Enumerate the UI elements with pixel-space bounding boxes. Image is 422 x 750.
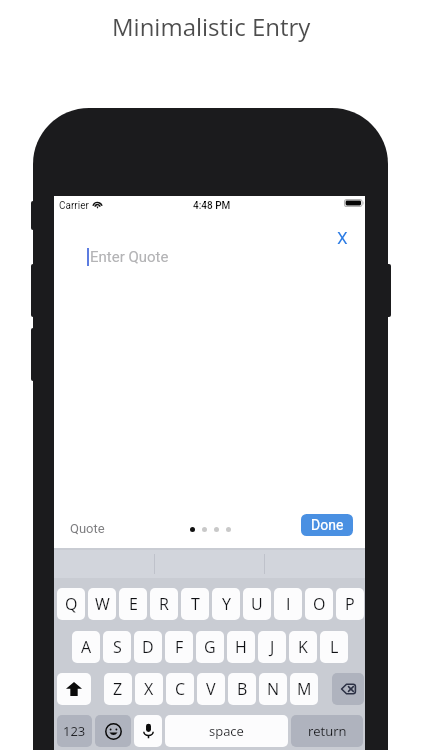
button[interactable]: F [165,631,193,663]
staticText: N [267,678,280,700]
button[interactable]: X [135,673,163,705]
staticText: A [81,636,92,658]
button[interactable]: W [88,588,116,620]
staticText: T [191,593,200,615]
button[interactable]: D [134,631,162,663]
button[interactable]: C [166,673,194,705]
button[interactable]: 123 [57,715,92,747]
button[interactable]: N [259,673,287,705]
staticText: M [297,678,312,700]
staticText: B [237,678,248,700]
button[interactable]: A [72,631,100,663]
button[interactable]: return [291,715,363,747]
staticText: S [113,636,122,658]
staticText: O [313,593,326,615]
staticText: 123 [63,722,86,740]
staticText: Q [65,593,78,615]
button[interactable]: Dictation [134,715,162,747]
button[interactable]: M [290,673,318,705]
button[interactable]: Y [212,588,240,620]
staticText: J [270,636,275,658]
staticText: E [129,593,138,615]
button[interactable]: Backspace [332,673,364,705]
button[interactable]: Shift [57,673,91,705]
button[interactable]: T [181,588,209,620]
button[interactable]: Done [301,514,353,536]
button[interactable]: Quote [70,521,105,536]
staticText: Z [113,678,123,700]
button[interactable]: Close [327,224,357,252]
staticText: Minimalistic Entry [112,10,311,43]
button[interactable]: Q [57,588,85,620]
button[interactable]: P [336,588,364,620]
staticText: X [337,228,348,248]
button[interactable]: V [197,673,225,705]
staticText: P [345,593,355,615]
button[interactable]: H [227,631,255,663]
staticText: V [206,678,216,700]
staticText: H [235,636,247,658]
staticText: I [286,593,291,615]
button[interactable]: B [228,673,256,705]
staticText: Done [311,517,344,533]
button[interactable]: I [274,588,302,620]
staticText: X [144,678,154,700]
staticText: Carrier [59,200,89,212]
button[interactable]: O [305,588,333,620]
staticText: K [298,636,308,658]
staticText: 4:48 PM [193,200,231,212]
button[interactable]: R [150,588,178,620]
staticText: W [95,593,110,615]
staticText: D [142,636,154,658]
button[interactable]: K [289,631,317,663]
staticText: L [330,636,339,658]
staticText: return [308,722,347,740]
staticText: space [209,722,244,740]
staticText: Y [222,593,231,615]
button[interactable]: U [243,588,271,620]
button[interactable]: G [196,631,224,663]
staticText: U [251,593,263,615]
staticText: G [204,636,216,658]
button[interactable]: space [165,715,288,747]
button[interactable]: J [258,631,286,663]
staticText: F [175,636,184,658]
staticText: Enter Quote [90,248,169,266]
button[interactable]: L [320,631,348,663]
button[interactable]: Z [104,673,132,705]
staticText: R [159,593,169,615]
button[interactable]: S [103,631,131,663]
staticText: C [175,678,186,700]
button[interactable]: E [119,588,147,620]
button[interactable]: Emoji [95,715,131,747]
